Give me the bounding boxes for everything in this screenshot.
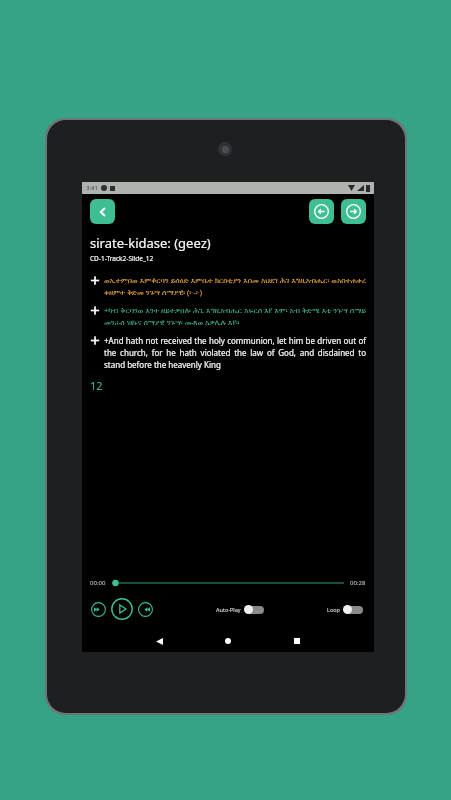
- button[interactable]: Toggle: [343, 605, 363, 614]
- button[interactable]: Next: [341, 199, 366, 224]
- button[interactable]: Play: [111, 598, 133, 620]
- staticText: Loop: [327, 606, 340, 613]
- staticText: Auto-Play: [216, 606, 241, 613]
- button[interactable]: Rewind: [91, 602, 106, 617]
- staticText: 12: [90, 378, 103, 393]
- button[interactable]: [112, 578, 344, 588]
- staticText: 00:28: [350, 579, 366, 587]
- staticText: +ካብ ቅርባንወ እንተ ዘይተቃበለ፡ ሕጊ እግዚአብሔር አፍርሰ እየ…: [104, 305, 366, 327]
- staticText: 00:00: [90, 579, 106, 587]
- button[interactable]: Back: [90, 199, 115, 224]
- button[interactable]: Recents: [289, 633, 305, 649]
- button[interactable]: Fast forward: [138, 602, 153, 617]
- staticText: sirate-kidase: (geez): [90, 234, 211, 252]
- button[interactable]: Previous: [309, 199, 334, 224]
- button[interactable]: Home: [220, 633, 236, 649]
- button[interactable]: Toggle: [244, 605, 264, 614]
- button[interactable]: Back: [151, 633, 167, 649]
- staticText: CD-1-Track2-Slide_12: [90, 254, 154, 263]
- staticText: +And hath not received the holy communio…: [104, 335, 366, 370]
- staticText: 3:41: [86, 184, 98, 192]
- staticText: ወኢተምበወ እምቆርባን ይሰዕድ እምቤተ ክርስቲያን እስመ አህደገ …: [104, 275, 366, 297]
